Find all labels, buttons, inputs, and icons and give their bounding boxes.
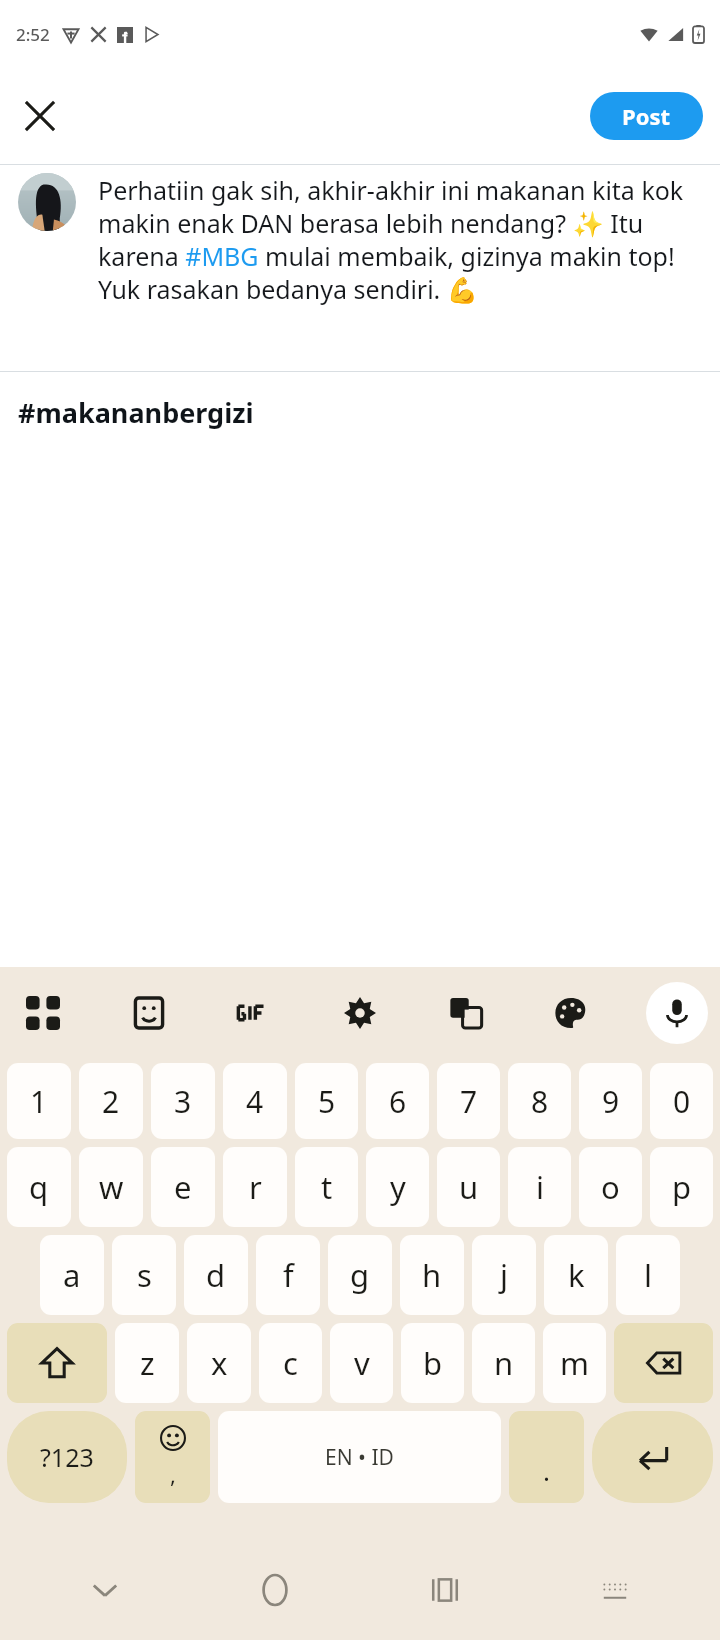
button[interactable]: Translate: [435, 982, 497, 1044]
staticText: b: [423, 1342, 443, 1384]
staticText: ?123: [40, 1440, 94, 1474]
button[interactable]: Apps: [12, 982, 74, 1044]
staticText: 8: [531, 1081, 549, 1122]
staticText: q: [29, 1166, 49, 1208]
button[interactable]: 7: [437, 1063, 500, 1139]
button[interactable]: j: [472, 1235, 536, 1315]
staticText: n: [494, 1342, 514, 1384]
button[interactable]: Perhatiin gak sih, akhir-akhir ini makan…: [98, 173, 706, 371]
staticText: 6: [389, 1081, 407, 1122]
button[interactable]: v: [330, 1323, 393, 1403]
button[interactable]: r: [223, 1147, 287, 1227]
staticText: k: [568, 1254, 585, 1296]
button[interactable]: c: [259, 1323, 322, 1403]
staticText: EN • ID: [325, 1443, 394, 1472]
staticText: g: [350, 1254, 370, 1296]
staticText: 0: [673, 1081, 691, 1122]
button[interactable]: i: [508, 1147, 571, 1227]
button[interactable]: Voice input: [646, 982, 708, 1044]
button[interactable]: 4: [223, 1063, 287, 1139]
staticText: o: [601, 1166, 620, 1208]
button[interactable]: Profile photo: [18, 173, 76, 231]
button[interactable]: #makananbergizi: [18, 394, 720, 431]
staticText: r: [249, 1166, 262, 1208]
staticText: s: [137, 1254, 152, 1296]
staticText: 2: [102, 1081, 120, 1122]
button[interactable]: w: [79, 1147, 143, 1227]
button[interactable]: 2: [79, 1063, 143, 1139]
staticText: f: [283, 1254, 294, 1296]
button[interactable]: Settings: [329, 982, 391, 1044]
button[interactable]: t: [295, 1147, 358, 1227]
button[interactable]: 5: [295, 1063, 358, 1139]
button[interactable]: Themes: [540, 982, 602, 1044]
staticText: Post: [622, 101, 671, 131]
button[interactable]: ?123: [7, 1411, 127, 1503]
button[interactable]: Backspace: [614, 1323, 713, 1403]
button[interactable]: k: [544, 1235, 608, 1315]
staticText: x: [211, 1342, 228, 1384]
button[interactable]: y: [366, 1147, 429, 1227]
button[interactable]: Shift: [7, 1323, 107, 1403]
staticText: j: [500, 1254, 508, 1296]
staticText: 7: [460, 1081, 478, 1122]
staticText: i: [536, 1166, 544, 1208]
button[interactable]: Hide keyboard: [75, 1560, 135, 1620]
staticText: y: [390, 1166, 406, 1208]
staticText: 2:52: [16, 23, 50, 46]
button[interactable]: n: [472, 1323, 535, 1403]
button[interactable]: 0: [650, 1063, 713, 1139]
staticText: ,: [170, 1459, 176, 1489]
button[interactable]: Emoji: [135, 1411, 210, 1503]
button[interactable]: a: [40, 1235, 104, 1315]
staticText: a: [63, 1254, 81, 1296]
button[interactable]: 6: [366, 1063, 429, 1139]
button[interactable]: u: [437, 1147, 500, 1227]
button[interactable]: 9: [579, 1063, 642, 1139]
staticText: 4: [246, 1081, 264, 1122]
button[interactable]: 3: [151, 1063, 215, 1139]
staticText: 1: [30, 1081, 48, 1122]
button[interactable]: q: [7, 1147, 71, 1227]
button[interactable]: Recents: [415, 1560, 475, 1620]
staticText: c: [283, 1342, 298, 1384]
button[interactable]: Close: [12, 88, 68, 144]
staticText: z: [140, 1342, 155, 1384]
button[interactable]: m: [543, 1323, 606, 1403]
button[interactable]: 8: [508, 1063, 571, 1139]
button[interactable]: z: [115, 1323, 179, 1403]
staticText: 5: [318, 1081, 336, 1122]
button[interactable]: f: [256, 1235, 320, 1315]
staticText: m: [560, 1342, 589, 1384]
button[interactable]: p: [650, 1147, 713, 1227]
button[interactable]: Stickers: [118, 982, 180, 1044]
button[interactable]: s: [112, 1235, 176, 1315]
button[interactable]: o: [579, 1147, 642, 1227]
button[interactable]: e: [151, 1147, 215, 1227]
button[interactable]: EN • ID: [218, 1411, 501, 1503]
button[interactable]: Home: [245, 1560, 305, 1620]
staticText: t: [321, 1166, 333, 1208]
button[interactable]: .: [509, 1411, 584, 1503]
staticText: #makananbergizi: [18, 394, 254, 431]
staticText: Perhatiin gak sih, akhir-akhir ini makan…: [98, 173, 706, 306]
staticText: 9: [602, 1081, 620, 1122]
button[interactable]: Switch keyboard: [585, 1560, 645, 1620]
button[interactable]: Enter: [592, 1411, 713, 1503]
staticText: h: [422, 1254, 442, 1296]
button[interactable]: Post: [590, 92, 703, 140]
button[interactable]: x: [187, 1323, 251, 1403]
staticText: .: [543, 1453, 550, 1488]
button[interactable]: GIF: [223, 982, 285, 1044]
staticText: u: [459, 1166, 479, 1208]
button[interactable]: g: [328, 1235, 392, 1315]
staticText: w: [99, 1166, 124, 1208]
staticText: d: [206, 1254, 226, 1296]
button[interactable]: h: [400, 1235, 464, 1315]
staticText: v: [354, 1342, 370, 1384]
button[interactable]: 1: [7, 1063, 71, 1139]
button[interactable]: d: [184, 1235, 248, 1315]
staticText: p: [672, 1166, 692, 1208]
button[interactable]: l: [616, 1235, 680, 1315]
button[interactable]: b: [401, 1323, 464, 1403]
